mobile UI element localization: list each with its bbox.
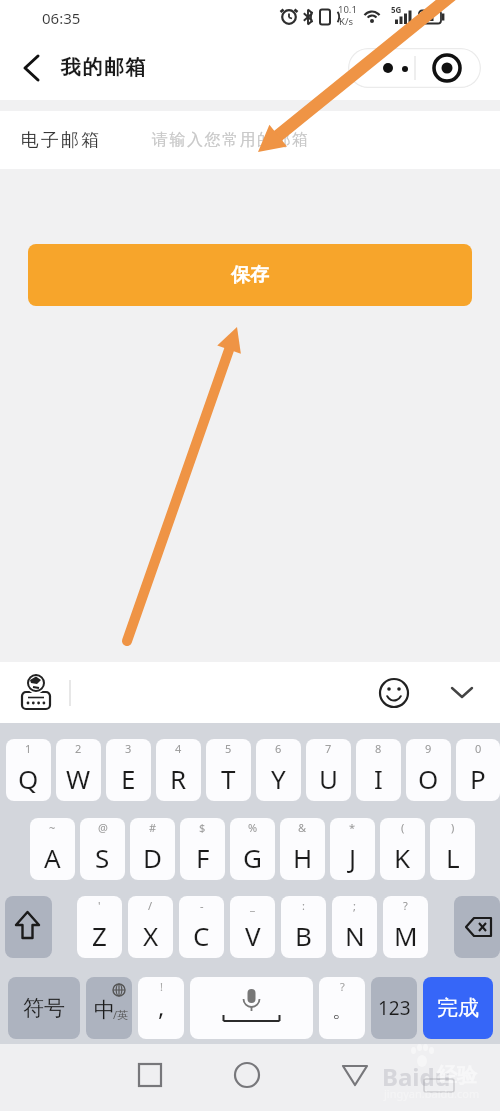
button[interactable]: 3: [106, 739, 151, 801]
button[interactable]: [5, 896, 52, 958]
staticText: &: [298, 820, 307, 835]
staticText: G: [243, 840, 262, 875]
staticText: 1: [25, 741, 32, 756]
button[interactable]: 5: [206, 739, 251, 801]
staticText: 10.1: [338, 3, 357, 16]
staticText: 7: [325, 741, 332, 756]
button[interactable]: [454, 896, 500, 958]
staticText: H: [293, 840, 313, 875]
button[interactable]: [0, 662, 70, 723]
staticText: #: [149, 820, 157, 835]
button[interactable]: ~: [30, 818, 75, 880]
staticText: C: [193, 918, 210, 953]
button[interactable]: ): [430, 818, 475, 880]
staticText: 6: [275, 741, 282, 756]
button[interactable]: 8: [356, 739, 401, 801]
staticText: E: [121, 761, 136, 796]
button[interactable]: 2: [56, 739, 101, 801]
button[interactable]: [166, 1044, 333, 1111]
button[interactable]: 0: [456, 739, 500, 801]
staticText: ~: [49, 820, 56, 835]
staticText: 0: [475, 741, 482, 756]
staticText: V: [245, 918, 261, 953]
button[interactable]: 完成: [423, 977, 493, 1039]
staticText: Baidu: [382, 1060, 451, 1093]
staticText: $: [199, 820, 206, 835]
button[interactable]: /: [128, 896, 173, 958]
staticText: U: [319, 761, 339, 796]
button[interactable]: -: [179, 896, 224, 958]
staticText: 保存: [231, 263, 269, 287]
button[interactable]: [380, 662, 440, 723]
button[interactable]: ': [77, 896, 122, 958]
staticText: 9: [425, 741, 432, 756]
staticText: R: [170, 761, 187, 796]
staticText: (: [401, 820, 405, 835]
staticText: F: [196, 840, 210, 875]
staticText: 5G: [391, 4, 402, 15]
staticText: L: [446, 840, 460, 875]
staticText: ,: [158, 990, 165, 1023]
button[interactable]: 9: [406, 739, 451, 801]
staticText: %: [248, 820, 258, 835]
staticText: 5: [225, 741, 232, 756]
staticText: K/s: [339, 15, 353, 28]
staticText: /: [148, 898, 153, 913]
staticText: Z: [92, 918, 107, 953]
staticText: 请输入您常用的邮箱: [152, 130, 310, 150]
button[interactable]: 电子邮箱: [0, 111, 500, 169]
staticText: Q: [18, 761, 39, 796]
staticText: ;: [353, 898, 356, 913]
staticText: N: [345, 918, 365, 953]
staticText: _: [250, 898, 255, 913]
staticText: 完成: [437, 995, 479, 1021]
button[interactable]: [190, 977, 313, 1039]
staticText: M: [394, 918, 418, 953]
staticText: :: [302, 898, 305, 913]
staticText: @: [98, 820, 108, 835]
button[interactable]: *: [330, 818, 375, 880]
button[interactable]: 中: [86, 977, 132, 1039]
button[interactable]: 7: [306, 739, 351, 801]
button[interactable]: #: [130, 818, 175, 880]
staticText: -: [200, 898, 204, 913]
button[interactable]: [333, 1044, 500, 1111]
button[interactable]: @: [80, 818, 125, 880]
staticText: 电子邮箱: [20, 129, 100, 152]
staticText: A: [44, 840, 61, 875]
button[interactable]: 123: [371, 977, 417, 1039]
button[interactable]: [0, 35, 56, 100]
button[interactable]: ;: [332, 896, 377, 958]
button[interactable]: &: [280, 818, 325, 880]
button[interactable]: _: [230, 896, 275, 958]
button[interactable]: [348, 48, 414, 88]
staticText: 3: [125, 741, 132, 756]
button[interactable]: [440, 662, 500, 723]
button[interactable]: 4: [156, 739, 201, 801]
button[interactable]: %: [230, 818, 275, 880]
staticText: 。: [332, 998, 352, 1023]
staticText: X: [143, 918, 159, 953]
button[interactable]: [0, 1044, 166, 1111]
button[interactable]: 符号: [8, 977, 80, 1039]
staticText: 我的邮箱: [60, 55, 146, 80]
button[interactable]: (: [380, 818, 425, 880]
staticText: D: [143, 840, 162, 875]
button[interactable]: ?: [319, 977, 365, 1039]
staticText: S: [95, 840, 110, 875]
button[interactable]: 6: [256, 739, 301, 801]
button[interactable]: ?: [383, 896, 428, 958]
button[interactable]: !: [138, 977, 184, 1039]
button[interactable]: 保存: [28, 244, 472, 306]
staticText: ': [98, 898, 101, 913]
button[interactable]: :: [281, 896, 326, 958]
staticText: 8: [375, 741, 382, 756]
staticText: 4: [175, 741, 182, 756]
staticText: jingyan.baidu.com: [384, 1086, 480, 1101]
staticText: 06:35: [42, 8, 81, 28]
button[interactable]: 1: [6, 739, 51, 801]
button[interactable]: [415, 48, 481, 88]
staticText: P: [470, 761, 486, 796]
button[interactable]: $: [180, 818, 225, 880]
staticText: ?: [403, 898, 408, 913]
